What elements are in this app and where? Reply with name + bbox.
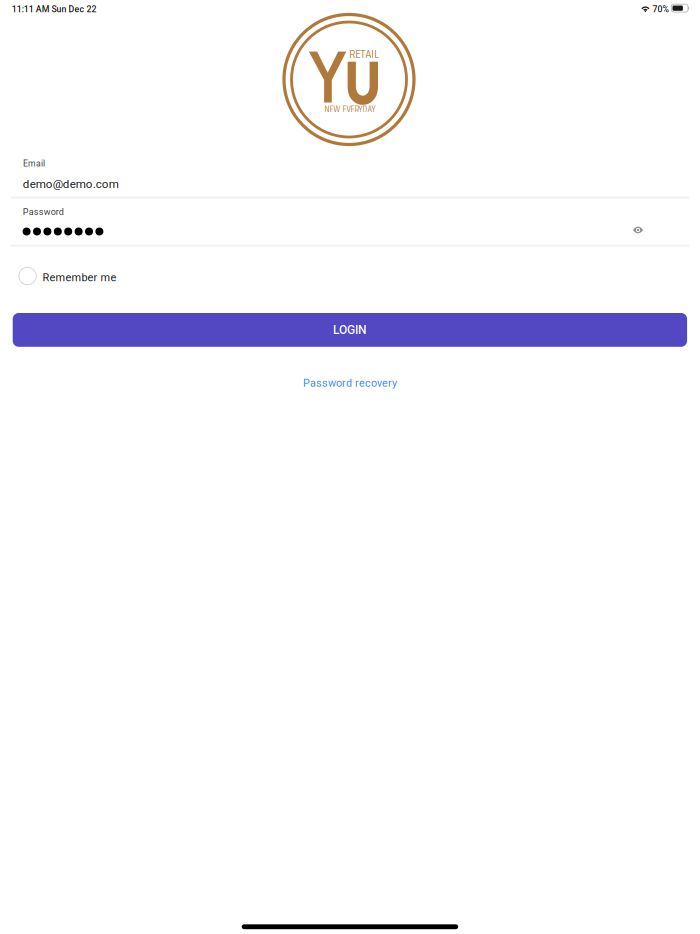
staticText: 11:11 AM: [12, 4, 50, 14]
staticText: Email: [23, 158, 45, 169]
staticText: RETAIL: [349, 44, 379, 63]
button[interactable]: Password recovery: [285, 371, 415, 395]
staticText: 70%: [652, 4, 668, 14]
staticText: LOGIN: [333, 323, 367, 337]
staticText: demo@demo.com: [23, 177, 119, 191]
button[interactable]: Show password: [621, 217, 655, 243]
staticText: Password recovery: [303, 377, 397, 389]
staticText: Password: [23, 206, 64, 217]
staticText: Remember me: [43, 271, 117, 284]
button[interactable]: Remember me: [18, 261, 148, 291]
button[interactable]: LOGIN: [13, 313, 687, 347]
staticText: NEW EVERYDAY: [324, 102, 375, 116]
staticText: Sun Dec 22: [52, 4, 97, 14]
